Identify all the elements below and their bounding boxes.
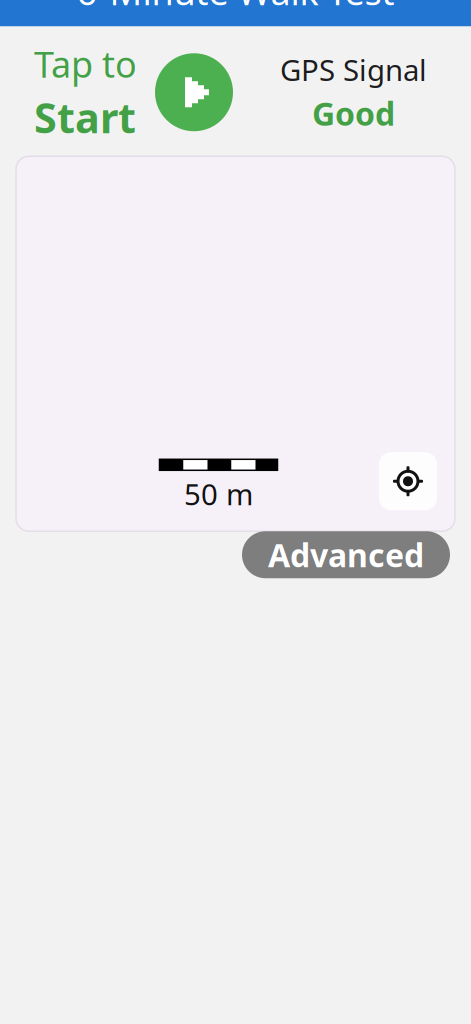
button[interactable]: Center on current location (379, 452, 437, 510)
staticText: Good (312, 92, 395, 134)
button[interactable]: Advanced (242, 531, 450, 578)
staticText: Advanced (268, 533, 424, 576)
staticText: Start (34, 90, 136, 145)
staticText: 50 m (184, 474, 253, 513)
staticText: GPS Signal (280, 50, 427, 89)
button[interactable]: Tap to (0, 40, 233, 145)
staticText: 6-Minute Walk Test (76, 0, 394, 15)
staticText: Tap to (34, 40, 137, 88)
